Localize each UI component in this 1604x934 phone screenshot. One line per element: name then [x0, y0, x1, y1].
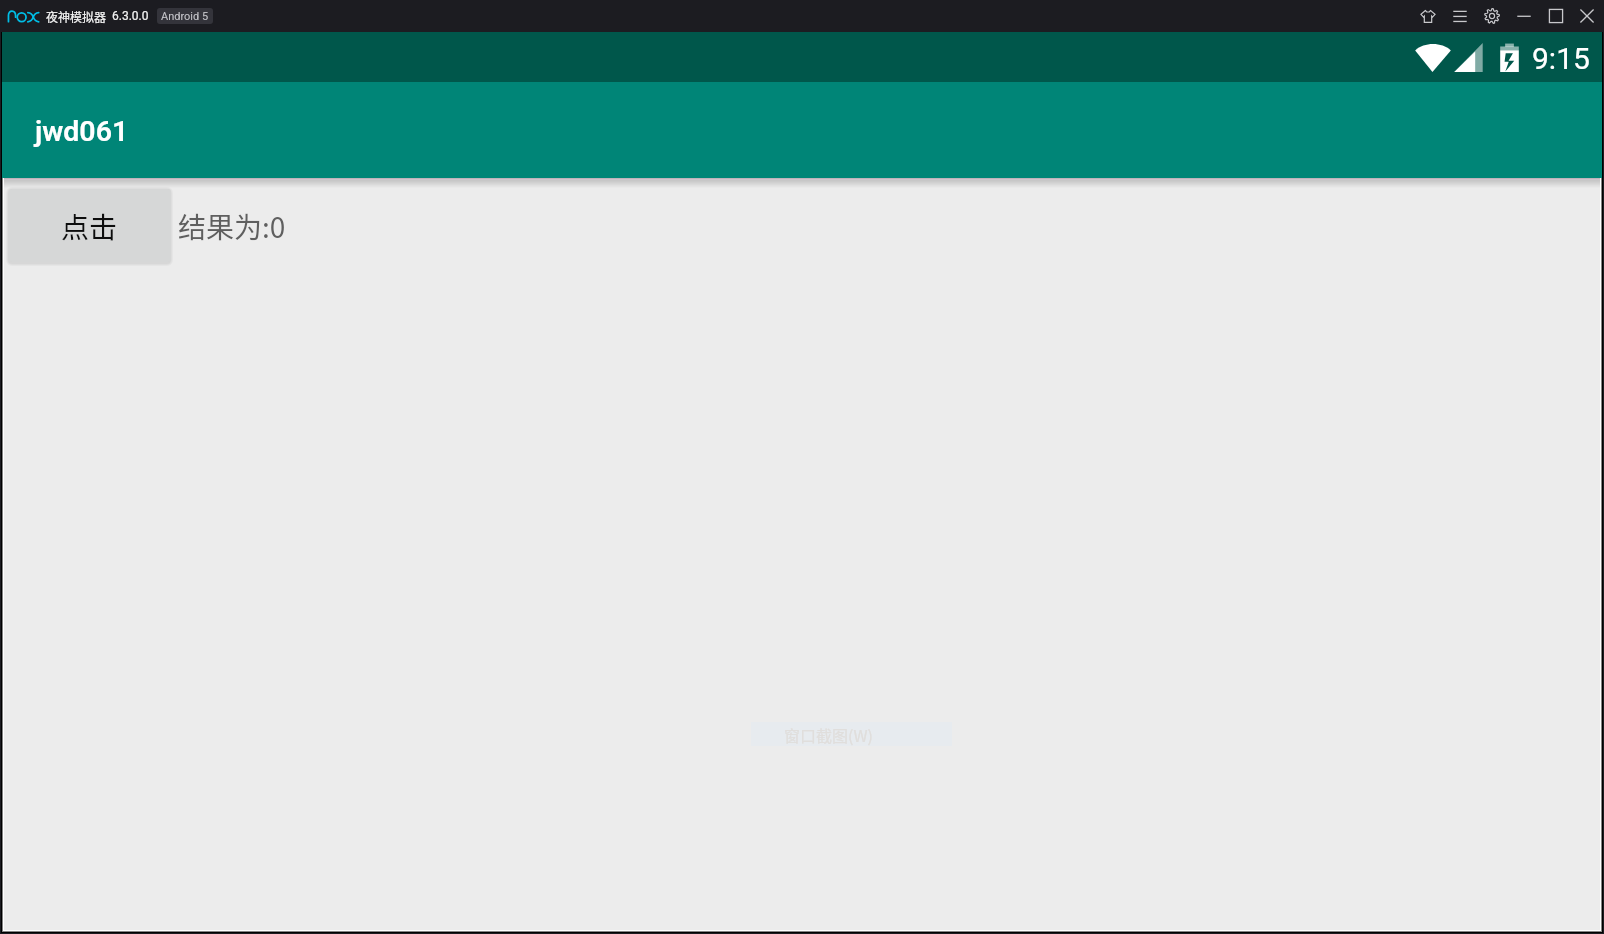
button[interactable]: Close: [1571, 0, 1603, 32]
button[interactable]: Android 5: [157, 8, 213, 24]
staticText: jwd061: [35, 115, 129, 148]
staticText: 结果为:0: [178, 206, 286, 247]
button[interactable]: Menu: [1444, 0, 1476, 32]
button[interactable]: Minimize: [1508, 0, 1540, 32]
staticText: 6.3.0.0: [112, 9, 149, 23]
staticText: 点击: [61, 206, 118, 247]
button[interactable]: 点击: [9, 189, 171, 262]
button[interactable]: Settings: [1476, 0, 1508, 32]
staticText: 窗口截图(W): [784, 723, 873, 746]
button[interactable]: Themes: [1411, 0, 1444, 32]
staticText: 9:15: [1532, 41, 1590, 76]
staticText: Android 5: [161, 10, 209, 23]
staticText: 夜神模拟器: [46, 8, 107, 25]
button[interactable]: Maximize: [1540, 0, 1571, 32]
